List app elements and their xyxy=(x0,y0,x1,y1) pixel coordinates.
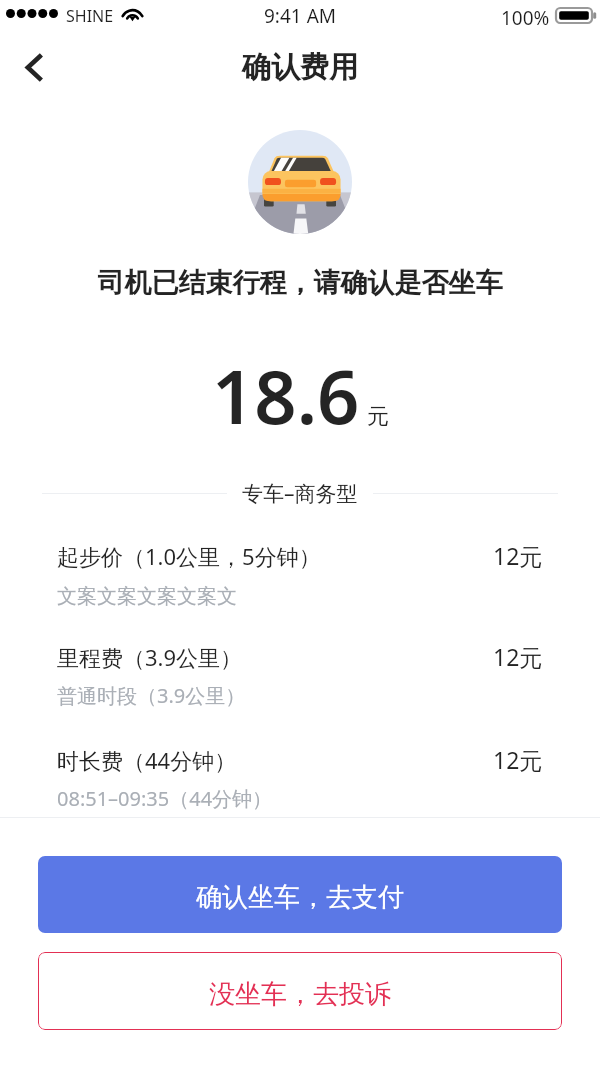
staticText: 元 xyxy=(367,403,389,431)
button[interactable]: 确认坐车，去支付 xyxy=(38,856,562,933)
button[interactable]: 没坐车，去投诉 xyxy=(38,952,562,1030)
staticText: 里程费（3.9公里） xyxy=(57,642,243,672)
staticText: 文案文案文案文案文 xyxy=(57,584,237,609)
staticText: 12元 xyxy=(493,641,543,672)
staticText: 9:41 AM xyxy=(0,3,600,29)
staticText: 12元 xyxy=(493,744,543,775)
staticText: 司机已结束行程，请确认是否坐车 xyxy=(0,266,600,300)
staticText: 08:51–09:35（44分钟） xyxy=(57,785,273,812)
staticText: 18.6 xyxy=(212,345,360,446)
staticText: SHINE xyxy=(66,5,114,27)
staticText: 没坐车，去投诉 xyxy=(209,978,391,1011)
staticText: 起步价（1.0公里，5分钟） xyxy=(57,541,321,571)
staticText: 普通时段（3.9公里） xyxy=(57,682,246,709)
staticText: 确认费用 xyxy=(242,49,358,86)
staticText: 100% xyxy=(501,5,550,31)
staticText: 时长费（44分钟） xyxy=(57,745,237,775)
staticText: 专车–商务型 xyxy=(242,479,358,508)
staticText: 确认坐车，去支付 xyxy=(196,881,404,914)
staticText: 12元 xyxy=(493,540,543,571)
button[interactable]: Back xyxy=(0,39,66,95)
